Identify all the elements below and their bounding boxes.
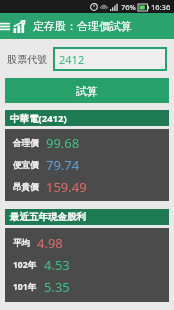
staticText: 便宜價 [13,160,39,171]
button[interactable]: Stock chart [11,18,28,35]
button[interactable]: 平均 [5,232,169,254]
button[interactable]: 最近五年現金股利 [5,209,169,225]
staticText: 最近五年現金股利 [10,211,86,223]
staticText: 平均 [13,238,30,249]
button[interactable]: 便宜價 [5,154,169,176]
button[interactable]: 101年 [5,276,169,298]
button[interactable]: 中華電(2412) [5,110,169,126]
staticText: 5.35 [44,278,70,296]
button[interactable]: 試算 [5,78,169,103]
staticText: 試算 [76,84,98,98]
button[interactable]: 昂貴價 [5,176,169,198]
staticText: 定存股：合理價試算 [33,19,132,33]
staticText: 4.98 [37,234,63,252]
staticText: 股票代號 [7,53,47,66]
staticText: 中華電(2412) [10,112,67,125]
staticText: 昂貴價 [13,182,39,193]
button[interactable]: 102年 [5,254,169,276]
staticText: 99.68 [46,134,80,152]
staticText: 16:36 [151,2,171,12]
staticText: 4.53 [44,256,70,274]
staticText: 79.74 [46,156,80,174]
button[interactable]: 合理價 [5,132,169,154]
staticText: 101年 [13,281,37,293]
staticText: 合理價 [13,138,39,149]
staticText: 2412 [59,52,85,67]
staticText: 159.49 [46,178,87,196]
staticText: 76% [121,2,136,12]
button[interactable]: Open navigation menu [0,13,11,39]
staticText: 102年 [13,259,37,271]
button[interactable]: 2412 [53,47,167,71]
